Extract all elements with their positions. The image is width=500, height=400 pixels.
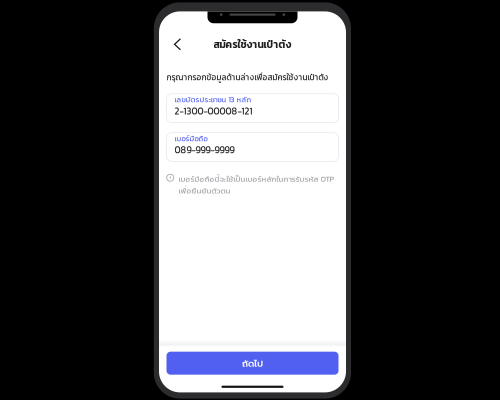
- staticText: เลขบัตรประชาชน 13 หลัก: [174, 94, 251, 105]
- staticText: สมัครใช้งานเป๋าตัง: [213, 37, 291, 52]
- staticText: ถัดไป: [242, 356, 263, 370]
- staticText: เบอร์มือถือ: [174, 133, 207, 144]
- staticText: 2-1300-00008-121: [174, 104, 252, 118]
- button[interactable]: เลขบัตรประชาชน 13 หลัก: [166, 94, 338, 122]
- staticText: เบอร์มือถือนี้จะใช้เป็นเบอร์หลักในการรับ…: [178, 173, 334, 196]
- staticText: 089-999-9999: [174, 143, 234, 157]
- staticText: กรุณากรอกข้อมูลด้านล่างเพื่อสมัครใช้งานเ…: [166, 71, 328, 84]
- button[interactable]: Back: [166, 33, 188, 55]
- button[interactable]: เบอร์มือถือ: [166, 133, 338, 161]
- button[interactable]: ถัดไป: [166, 352, 338, 375]
